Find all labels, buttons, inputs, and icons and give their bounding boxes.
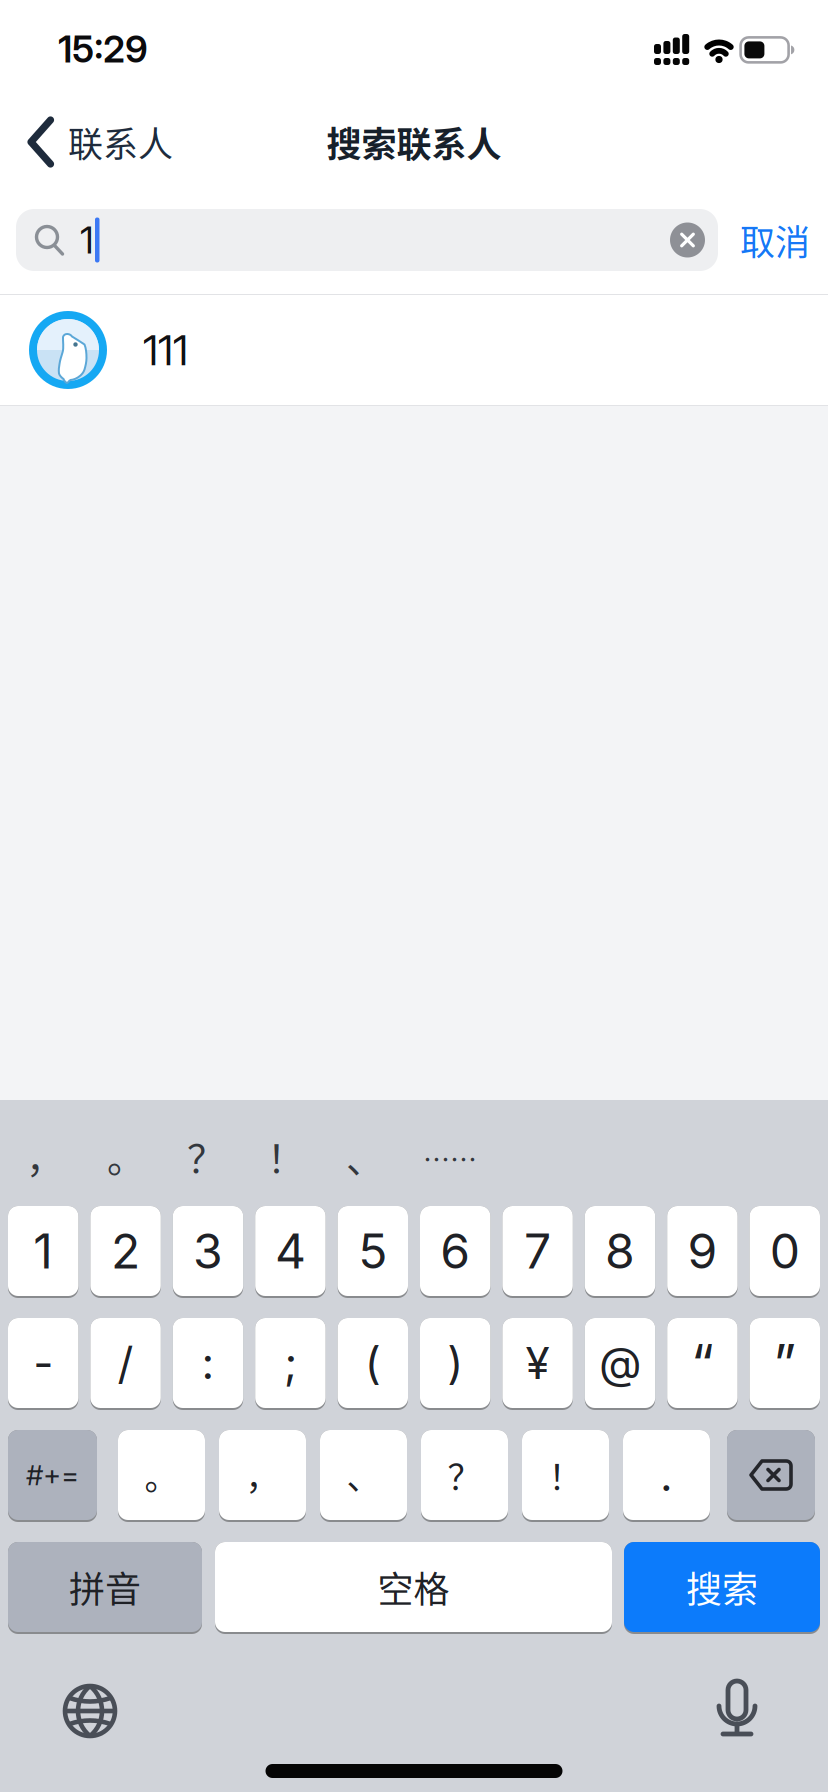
button[interactable]: / xyxy=(90,1318,161,1410)
staticText: ， xyxy=(26,1128,64,1183)
button[interactable]: ？ xyxy=(421,1430,508,1522)
button[interactable]: 0 xyxy=(750,1206,820,1298)
staticText: 联系人 xyxy=(68,117,173,167)
button[interactable]: 9 xyxy=(667,1206,738,1298)
staticText: 空格 xyxy=(377,1561,449,1613)
button[interactable]: ( xyxy=(338,1318,408,1410)
staticText: ; xyxy=(284,1336,297,1390)
button[interactable]: 搜索 xyxy=(624,1542,820,1634)
button[interactable]: 8 xyxy=(585,1206,655,1298)
staticText: ！ xyxy=(548,1450,582,1500)
button[interactable]: 2 xyxy=(90,1206,161,1298)
staticText: 2 xyxy=(111,1222,140,1280)
button[interactable]: ， xyxy=(219,1430,306,1522)
staticText: ( xyxy=(365,1336,381,1390)
staticText: 搜索联系人 xyxy=(326,117,501,167)
button[interactable]: 1 xyxy=(16,209,718,271)
button[interactable]: Next keyboard xyxy=(62,1683,118,1739)
staticText: 1 xyxy=(33,1222,53,1280)
staticText: 111 xyxy=(143,325,188,375)
staticText: 、 xyxy=(346,1128,384,1183)
staticText: …… xyxy=(423,1138,477,1178)
staticText: 搜索 xyxy=(686,1561,758,1613)
button[interactable]: ！ xyxy=(267,1128,305,1183)
button[interactable]: 取消 xyxy=(718,215,810,265)
staticText: / xyxy=(118,1336,134,1390)
button[interactable]: @ xyxy=(585,1318,655,1410)
button[interactable]: 4 xyxy=(255,1206,326,1298)
button[interactable]: 、 xyxy=(346,1128,384,1183)
staticText: 8 xyxy=(605,1222,635,1280)
button[interactable]: : xyxy=(173,1318,243,1410)
staticText: 1 xyxy=(80,218,94,262)
staticText: 4 xyxy=(275,1222,306,1280)
button[interactable]: - xyxy=(8,1318,78,1410)
staticText: ！ xyxy=(267,1128,305,1183)
button[interactable]: 空格 xyxy=(215,1542,612,1634)
button[interactable]: ; xyxy=(255,1318,326,1410)
staticText: 9 xyxy=(687,1222,717,1280)
staticText: 、 xyxy=(346,1450,380,1500)
button[interactable]: 。 xyxy=(107,1128,145,1183)
staticText: 6 xyxy=(440,1222,470,1280)
button[interactable]: …… xyxy=(423,1138,477,1178)
button[interactable]: 1 xyxy=(8,1206,78,1298)
button[interactable]: 拼音 xyxy=(8,1542,202,1634)
staticText: ) xyxy=(447,1336,463,1390)
staticText: ” xyxy=(773,1331,796,1394)
button[interactable]: ！ xyxy=(522,1430,609,1522)
staticText: 3 xyxy=(193,1222,223,1280)
staticText: - xyxy=(33,1336,53,1390)
button[interactable]: #+= xyxy=(8,1430,97,1522)
button[interactable]: 6 xyxy=(420,1206,490,1298)
button[interactable]: 7 xyxy=(502,1206,573,1298)
staticText: 5 xyxy=(358,1222,387,1280)
staticText: 。 xyxy=(107,1128,145,1183)
staticText: ¥ xyxy=(526,1336,550,1390)
staticText: 0 xyxy=(770,1222,800,1280)
staticText: . xyxy=(660,1448,673,1502)
button[interactable]: ) xyxy=(420,1318,490,1410)
staticText: ？ xyxy=(447,1450,481,1500)
button[interactable]: Delete xyxy=(727,1430,815,1522)
button[interactable]: ？ xyxy=(187,1128,225,1183)
staticText: : xyxy=(201,1336,214,1390)
staticText: 7 xyxy=(524,1222,551,1280)
staticText: @ xyxy=(599,1336,641,1390)
staticText: #+= xyxy=(26,1458,79,1492)
button[interactable]: ， xyxy=(26,1128,64,1183)
staticText: ， xyxy=(245,1450,279,1500)
button[interactable]: Dictation xyxy=(713,1680,761,1740)
staticText: 15:29 xyxy=(58,27,148,71)
button[interactable]: ¥ xyxy=(502,1318,573,1410)
button[interactable]: 。 xyxy=(118,1430,205,1522)
staticText: 取消 xyxy=(740,215,810,265)
button[interactable]: Clear text xyxy=(670,222,705,257)
button[interactable]: ” xyxy=(750,1318,820,1410)
button[interactable]: Back xyxy=(0,116,173,168)
staticText: “ xyxy=(691,1331,714,1394)
button[interactable]: “ xyxy=(667,1318,738,1410)
button[interactable]: 111 xyxy=(0,295,828,405)
staticText: 拼音 xyxy=(69,1561,141,1613)
staticText: 。 xyxy=(144,1450,178,1500)
button[interactable]: 、 xyxy=(320,1430,407,1522)
button[interactable]: 3 xyxy=(173,1206,243,1298)
staticText: ？ xyxy=(187,1128,225,1183)
button[interactable]: 5 xyxy=(338,1206,408,1298)
button[interactable]: . xyxy=(623,1430,710,1522)
